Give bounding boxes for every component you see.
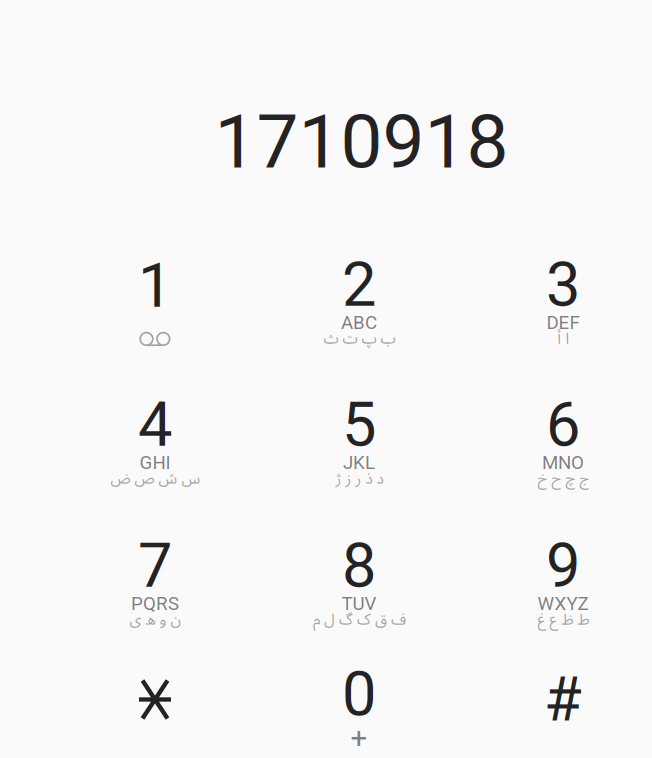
staticText: س ش ص ض	[110, 462, 200, 495]
staticText: ب پ ت ث	[323, 322, 395, 355]
staticText: 2	[342, 249, 376, 321]
button[interactable]: 2 ABC	[257, 232, 461, 372]
button[interactable]: star	[53, 625, 257, 758]
staticText: +	[350, 721, 367, 756]
button[interactable]: 6 MNO	[461, 372, 652, 512]
staticText: #	[544, 664, 582, 735]
staticText: 3	[546, 249, 580, 321]
button[interactable]: 5 JKL	[257, 372, 461, 512]
staticText: ف ق ک گ ل م	[312, 603, 405, 636]
staticText: 9	[546, 530, 580, 602]
staticText: 0	[342, 658, 376, 730]
button[interactable]: 8 TUV	[257, 513, 461, 653]
staticText: ط ظ ع غ	[537, 603, 589, 636]
staticText: ا أ	[557, 322, 569, 355]
staticText: PQRS	[131, 593, 179, 615]
staticText: 6	[546, 389, 580, 461]
button[interactable]: 4 GHI	[53, 372, 257, 512]
staticText: WXYZ	[537, 593, 588, 615]
staticText: 4	[138, 389, 172, 461]
staticText: MNO	[542, 452, 584, 474]
staticText: 7	[138, 530, 172, 602]
staticText: DEF	[546, 312, 579, 334]
button[interactable]: 3 DEF	[461, 232, 652, 372]
staticText: 1	[138, 250, 172, 322]
button[interactable]: 1	[53, 219, 257, 359]
staticText: 8	[342, 530, 376, 602]
staticText: ن و ه ی	[129, 603, 181, 636]
button[interactable]: 0 plus	[257, 637, 461, 758]
staticText: 5	[342, 389, 376, 461]
staticText: 1710918	[214, 98, 508, 186]
staticText: JKL	[343, 452, 375, 474]
staticText: TUV	[341, 593, 376, 615]
staticText: GHI	[139, 452, 170, 474]
button[interactable]: 7 PQRS	[53, 513, 257, 653]
staticText: ج چ ح خ	[537, 462, 589, 495]
staticText: ABC	[341, 312, 377, 334]
button[interactable]: pound	[461, 625, 652, 758]
staticText: د ذ ر ز ژ	[335, 462, 383, 495]
button[interactable]: 9 WXYZ	[461, 513, 652, 653]
